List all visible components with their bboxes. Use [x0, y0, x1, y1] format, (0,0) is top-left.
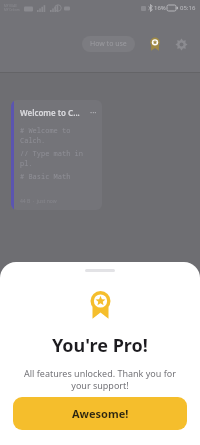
staticText: 44 B · just now	[20, 198, 57, 205]
button[interactable]: Pro badge	[144, 33, 166, 55]
staticText: 16%	[154, 4, 166, 12]
staticText: All features unlocked. Thank you for you…	[18, 367, 182, 392]
button[interactable]: Settings	[170, 33, 192, 55]
staticText: # Welcome to Calch.	[20, 126, 97, 146]
staticText: 05:16	[180, 4, 196, 12]
staticText: ···	[90, 107, 97, 118]
staticText: Welcome to C...	[20, 107, 80, 118]
staticText: How to use	[90, 39, 127, 49]
staticText: Awesome!	[72, 406, 129, 421]
staticText: // Type math in pl.	[20, 149, 97, 169]
button[interactable]: How to use	[82, 36, 135, 52]
staticText: # Basic Math	[20, 172, 71, 182]
staticText: MY KUAE	[4, 4, 17, 8]
staticText: You're Pro!	[52, 333, 148, 358]
staticText: MY Celcom	[4, 8, 20, 12]
button[interactable]: Awesome!	[13, 397, 187, 430]
button[interactable]: Welcome to C...	[11, 100, 102, 210]
